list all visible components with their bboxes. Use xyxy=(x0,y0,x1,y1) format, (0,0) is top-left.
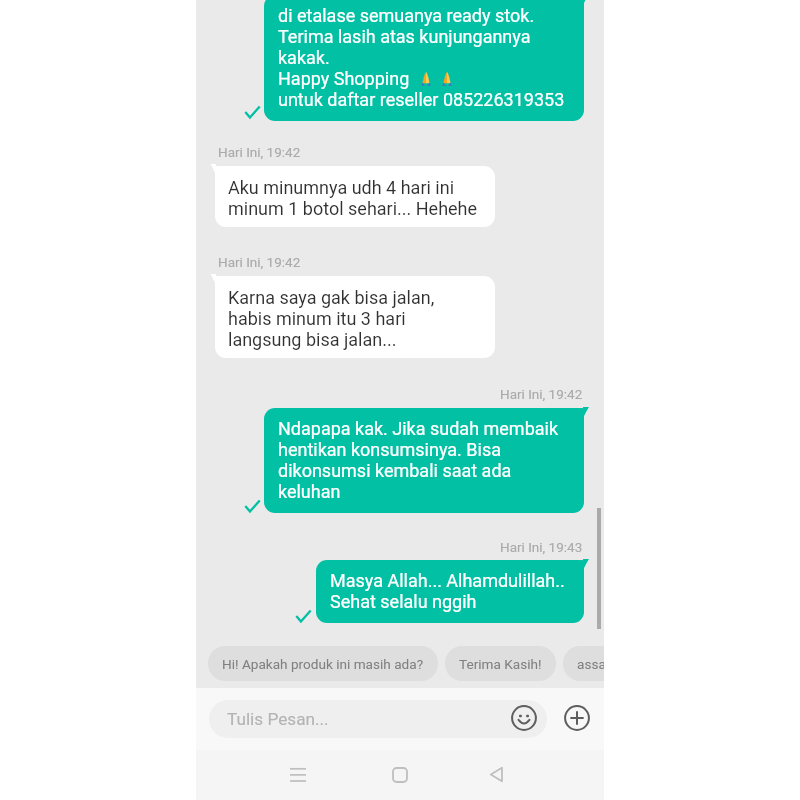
staticText: Hari Ini, 19:42 xyxy=(218,254,301,270)
staticText: kakak. xyxy=(278,47,330,68)
staticText: dikonsumsi kembali saat ada xyxy=(278,460,512,481)
staticText: di etalase semuanya ready stok. xyxy=(278,5,535,26)
staticText: keluhan xyxy=(278,481,341,502)
staticText: assalamualaikum xyxy=(577,656,604,672)
staticText: Terima lasih atas kunjungannya xyxy=(278,26,531,47)
staticText: langsung bisa jalan... xyxy=(228,329,397,350)
staticText: hentikan konsumsinya. Bisa xyxy=(278,439,501,460)
button[interactable]: Tulis Pesan... xyxy=(209,700,547,738)
staticText: Ndapapa kak. Jika sudah membaik xyxy=(278,418,559,439)
staticText: minum 1 botol sehari... Hehehe xyxy=(228,198,478,219)
staticText: Hi! Apakah produk ini masih ada? xyxy=(222,656,424,672)
staticText: Hari Ini, 19:42 xyxy=(218,144,301,160)
staticText: Karna saya gak bisa jalan, xyxy=(228,287,435,308)
button[interactable]: Terima Kasih! xyxy=(445,646,556,681)
staticText: Aku minumnya udh 4 hari ini xyxy=(228,177,455,198)
staticText: Masya Allah... Alhamdulillah.. xyxy=(330,570,565,591)
button[interactable]: Emoji xyxy=(511,705,537,731)
button[interactable]: Karna saya gak bisa jalan, xyxy=(215,276,495,358)
button[interactable]: Hi! Apakah produk ini masih ada? xyxy=(208,646,438,681)
button[interactable]: Back xyxy=(475,750,517,799)
button[interactable]: Masya Allah... Alhamdulillah.. xyxy=(316,560,584,623)
button[interactable]: Home xyxy=(379,750,421,799)
button[interactable]: Aku minumnya udh 4 hari ini xyxy=(215,166,495,227)
staticText: Hari Ini, 19:43 xyxy=(500,539,583,555)
staticText: Hari Ini, 19:42 xyxy=(500,386,583,402)
staticText: Terima Kasih! xyxy=(459,656,542,672)
staticText: untuk daftar reseller 085226319353 xyxy=(278,89,565,110)
staticText: habis minum itu 3 hari xyxy=(228,308,406,329)
button[interactable]: Add attachment xyxy=(564,705,590,731)
staticText: Happy Shopping xyxy=(278,68,410,89)
staticText: Sehat selalu nggih xyxy=(330,591,477,612)
staticText: Tulis Pesan... xyxy=(227,709,329,729)
button[interactable]: Ndapapa kak. Jika sudah membaik xyxy=(264,408,584,513)
button[interactable]: Recents xyxy=(277,750,319,799)
button[interactable]: di etalase semuanya ready stok. xyxy=(264,0,584,121)
button[interactable]: assalamualaikum xyxy=(563,646,604,681)
